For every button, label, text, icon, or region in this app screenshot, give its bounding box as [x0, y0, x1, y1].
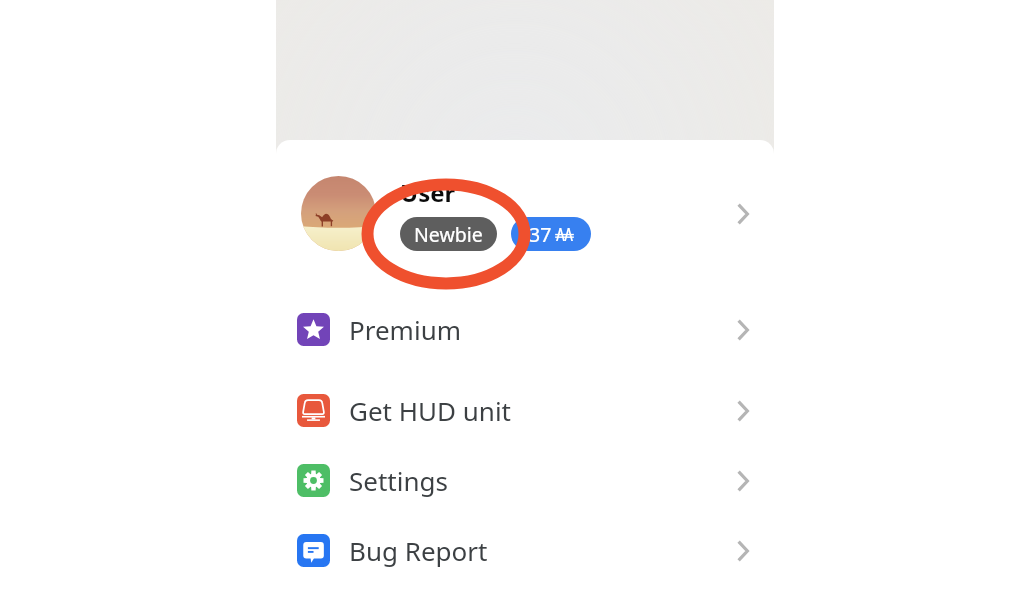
button[interactable]: Get HUD unit: [276, 375, 774, 446]
other: Open: [737, 203, 749, 225]
staticText: User: [400, 176, 456, 209]
other: Open: [737, 470, 749, 492]
button[interactable]: 37: [511, 217, 591, 251]
staticText: 37: [529, 221, 552, 248]
staticText: Settings: [349, 463, 737, 498]
button[interactable]: Bug Report: [276, 515, 774, 586]
button[interactable]: Premium: [276, 294, 774, 365]
staticText: Bug Report: [349, 533, 737, 568]
button[interactable]: User: [276, 140, 774, 294]
button[interactable]: Newbie: [400, 217, 497, 251]
other: Open: [737, 319, 749, 341]
button[interactable]: Settings: [276, 445, 774, 516]
staticText: Get HUD unit: [349, 393, 737, 428]
other: Open: [737, 400, 749, 422]
other: Open: [737, 540, 749, 562]
staticText: Premium: [349, 312, 737, 347]
staticText: Newbie: [414, 221, 483, 248]
